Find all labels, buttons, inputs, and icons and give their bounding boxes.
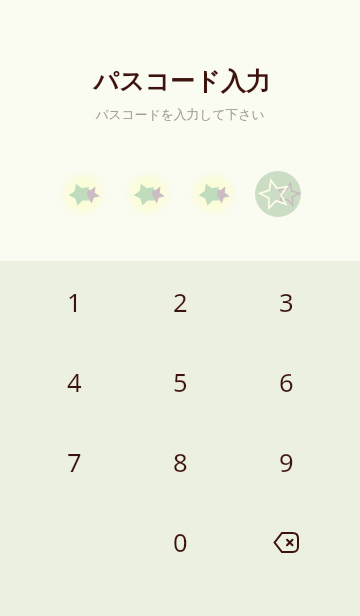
staticText: 8 xyxy=(173,445,188,480)
staticText: 5 xyxy=(173,365,188,400)
staticText: パスコード入力 xyxy=(93,66,271,97)
button[interactable]: 6 xyxy=(233,342,339,422)
staticText: 6 xyxy=(279,365,294,400)
staticText: 4 xyxy=(67,365,82,400)
button[interactable]: 8 xyxy=(127,422,233,502)
other: Backspace xyxy=(273,532,299,553)
button[interactable]: 0 xyxy=(127,502,233,582)
button[interactable]: 3 xyxy=(233,262,339,342)
staticText: 7 xyxy=(67,445,82,480)
button[interactable]: 2 xyxy=(127,262,233,342)
button[interactable]: 9 xyxy=(233,422,339,502)
button[interactable]: 5 xyxy=(127,342,233,422)
button[interactable]: 1 xyxy=(21,262,127,342)
button[interactable]: Backspace xyxy=(233,502,339,582)
staticText: 0 xyxy=(173,525,188,560)
button[interactable]: 7 xyxy=(21,422,127,502)
staticText: 9 xyxy=(279,445,294,480)
staticText: 3 xyxy=(279,285,294,320)
staticText: 1 xyxy=(67,285,82,320)
staticText: パスコードを入力して下さい xyxy=(95,107,265,123)
staticText: 2 xyxy=(173,285,188,320)
button[interactable]: 4 xyxy=(21,342,127,422)
